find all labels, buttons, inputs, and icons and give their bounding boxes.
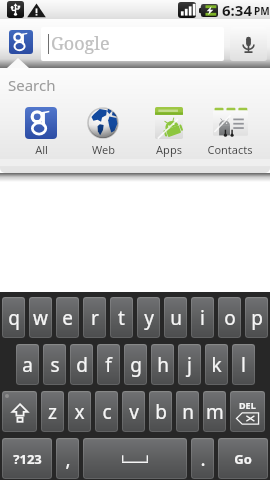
button[interactable]: Web bbox=[72, 107, 134, 157]
button[interactable]: v bbox=[122, 391, 145, 432]
staticText: Web bbox=[92, 142, 115, 157]
staticText: d bbox=[76, 352, 88, 378]
button[interactable] bbox=[83, 438, 187, 479]
button[interactable]: d bbox=[70, 344, 93, 385]
button[interactable]: y bbox=[137, 297, 160, 338]
button[interactable]: r bbox=[83, 297, 106, 338]
staticText: Google bbox=[51, 31, 110, 56]
button[interactable]: Google bbox=[41, 27, 224, 61]
staticText: All bbox=[35, 142, 48, 157]
staticText: a bbox=[22, 352, 33, 378]
staticText: Go bbox=[234, 450, 252, 468]
button[interactable]: t bbox=[110, 297, 133, 338]
staticText: e bbox=[62, 305, 73, 331]
button[interactable]: m bbox=[203, 391, 226, 432]
staticText: Search bbox=[8, 75, 56, 95]
staticText: f bbox=[105, 352, 112, 378]
staticText: h bbox=[157, 352, 169, 378]
button[interactable]: z bbox=[41, 391, 64, 432]
button[interactable]: Contacts bbox=[199, 107, 261, 157]
button[interactable]: Voice search bbox=[230, 27, 267, 61]
button[interactable]: , bbox=[56, 438, 79, 479]
staticText: g bbox=[130, 352, 142, 378]
button[interactable]: p bbox=[245, 297, 268, 338]
button[interactable]: DEL bbox=[230, 391, 265, 432]
staticText: c bbox=[102, 399, 112, 425]
staticText: PM bbox=[254, 4, 270, 18]
button[interactable]: s bbox=[43, 344, 66, 385]
staticText: i bbox=[200, 305, 205, 331]
button[interactable]: k bbox=[205, 344, 228, 385]
button[interactable]: q bbox=[2, 297, 25, 338]
staticText: 6:34 bbox=[222, 0, 252, 19]
button[interactable]: . bbox=[191, 438, 214, 479]
button[interactable]: f bbox=[97, 344, 120, 385]
button[interactable]: w bbox=[29, 297, 52, 338]
staticText: b bbox=[155, 399, 167, 425]
button[interactable]: h bbox=[151, 344, 174, 385]
button[interactable]: c bbox=[95, 391, 118, 432]
button[interactable]: ?123 bbox=[2, 438, 52, 479]
staticText: Contacts bbox=[207, 142, 253, 157]
button[interactable]: u bbox=[164, 297, 187, 338]
button[interactable]: All bbox=[10, 107, 72, 157]
staticText: t bbox=[118, 305, 125, 331]
staticText: v bbox=[129, 399, 139, 425]
staticText: q bbox=[8, 305, 20, 331]
button[interactable]: j bbox=[178, 344, 201, 385]
button[interactable]: e bbox=[56, 297, 79, 338]
button[interactable] bbox=[2, 391, 37, 432]
button[interactable]: n bbox=[176, 391, 199, 432]
button[interactable]: i bbox=[191, 297, 214, 338]
staticText: u bbox=[170, 305, 182, 331]
button[interactable]: a bbox=[16, 344, 39, 385]
staticText: r bbox=[91, 305, 99, 331]
staticText: n bbox=[182, 399, 194, 425]
staticText: x bbox=[74, 399, 85, 425]
button[interactable]: Go bbox=[218, 438, 268, 479]
button[interactable]: Search provider bbox=[9, 30, 33, 54]
button[interactable]: x bbox=[68, 391, 91, 432]
staticText: ?123 bbox=[13, 450, 42, 468]
staticText: w bbox=[33, 305, 48, 331]
staticText: k bbox=[211, 352, 222, 378]
staticText: j bbox=[187, 352, 192, 378]
button[interactable]: b bbox=[149, 391, 172, 432]
button[interactable]: Apps bbox=[138, 107, 200, 157]
staticText: m bbox=[206, 399, 224, 425]
staticText: Apps bbox=[156, 142, 182, 157]
staticText: , bbox=[65, 446, 71, 472]
button[interactable]: o bbox=[218, 297, 241, 338]
staticText: z bbox=[48, 399, 57, 425]
button[interactable]: l bbox=[232, 344, 255, 385]
staticText: l bbox=[241, 352, 246, 378]
staticText: o bbox=[224, 305, 236, 331]
staticText: p bbox=[251, 305, 263, 331]
staticText: . bbox=[200, 446, 206, 472]
staticText: y bbox=[144, 305, 154, 331]
staticText: DEL bbox=[239, 399, 256, 411]
button[interactable]: g bbox=[124, 344, 147, 385]
staticText: s bbox=[50, 352, 60, 378]
